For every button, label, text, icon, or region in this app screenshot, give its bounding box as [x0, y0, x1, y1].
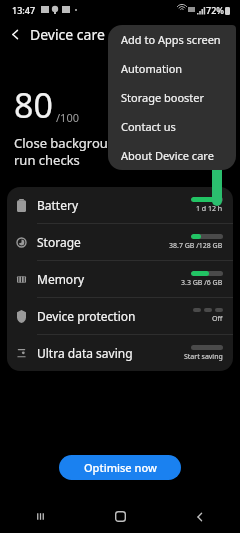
staticText: Contact us — [121, 119, 176, 134]
staticText: 3.3 GB /6 GB — [181, 278, 223, 288]
staticText: Ultra data saving — [37, 345, 133, 361]
button[interactable]: Back — [160, 500, 240, 533]
button[interactable]: Back — [0, 20, 30, 48]
staticText: 72% — [206, 4, 224, 16]
button[interactable]: Memory — [7, 261, 233, 297]
staticText: Device care — [30, 25, 105, 44]
staticText: 1 d 12 h — [196, 204, 223, 214]
staticText: 38.7 GB /128 GB — [169, 241, 223, 251]
button[interactable]: Ultra data saving — [7, 335, 233, 371]
staticText: Automation — [121, 61, 183, 76]
staticText: 13:47 — [12, 4, 36, 16]
staticText: Optimise now — [84, 460, 157, 475]
button[interactable]: Add to Apps screen — [108, 25, 236, 54]
staticText: Storage booster — [121, 90, 205, 105]
button[interactable]: Automation — [108, 54, 236, 83]
button[interactable]: Contact us — [108, 112, 236, 141]
staticText: /100 — [56, 110, 79, 125]
staticText: About Device care — [121, 148, 214, 163]
staticText: Start saving — [184, 352, 223, 362]
staticText: Battery — [37, 197, 79, 213]
staticText: Storage — [37, 234, 81, 250]
staticText: Add to Apps screen — [121, 32, 221, 47]
staticText: Off — [212, 314, 223, 324]
button[interactable]: Storage booster — [108, 83, 236, 112]
staticText: Close background apps and run checks — [14, 134, 184, 169]
staticText: Memory — [37, 271, 85, 287]
button[interactable]: Storage — [7, 224, 233, 260]
button[interactable]: About Device care — [108, 141, 236, 170]
button[interactable]: Recents — [0, 500, 80, 533]
staticText: Device protection — [37, 308, 136, 324]
button[interactable]: Device protection — [7, 298, 233, 334]
button[interactable]: Battery — [7, 187, 233, 223]
button[interactable]: Home — [80, 500, 160, 533]
staticText: 80 — [14, 82, 53, 128]
button[interactable]: Optimise now — [59, 455, 181, 480]
